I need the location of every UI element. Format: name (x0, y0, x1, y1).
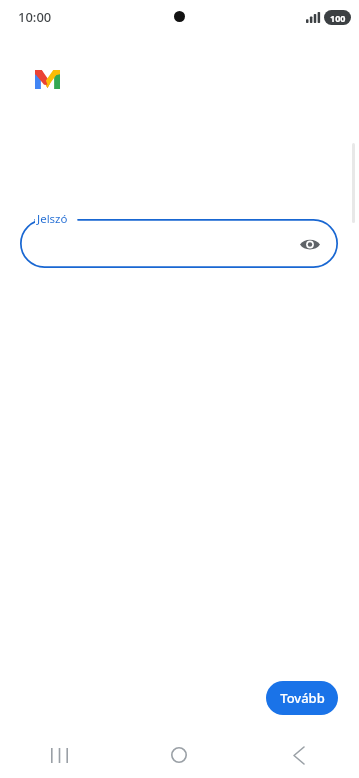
staticText: 100 (330, 12, 346, 24)
staticText: 10:00 (18, 8, 52, 26)
button[interactable]: Vissza (239, 732, 359, 778)
button[interactable]: Tovább (266, 681, 338, 715)
button[interactable]: Legutóbbiak (0, 732, 119, 778)
staticText: Tovább (280, 689, 325, 707)
staticText: Jelszó (37, 211, 68, 227)
button[interactable]: Kezdőképernyő (119, 732, 239, 778)
button[interactable]: Jelszó megjelenítése (297, 231, 323, 257)
button[interactable]: Jelszó megjelenítése (20, 219, 338, 268)
